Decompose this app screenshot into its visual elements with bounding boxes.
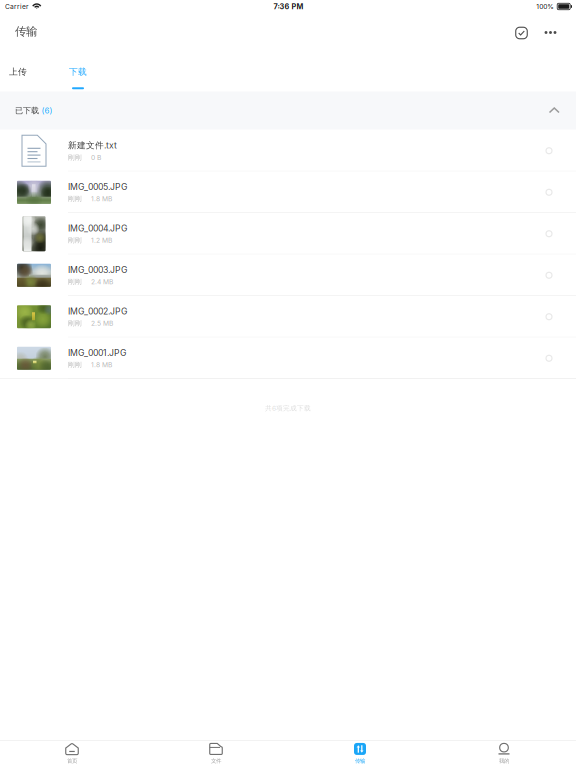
button[interactable]: 首页 <box>0 739 144 767</box>
staticText: 文件 <box>211 757 221 764</box>
staticText: 刚刚 <box>68 195 82 203</box>
staticText: 首页 <box>67 757 77 764</box>
staticText: Carrier <box>5 2 29 11</box>
button[interactable]: 传输 <box>288 739 432 767</box>
staticText: 新建文件.txt <box>68 140 117 151</box>
staticText: 1.2 MB <box>91 236 112 244</box>
staticText: 7:36 PM <box>274 2 304 11</box>
staticText: 下载 <box>69 66 87 77</box>
button[interactable]: IMG_0001.JPG <box>0 337 576 379</box>
button[interactable]: 我的 <box>432 739 576 767</box>
button[interactable]: IMG_0004.JPG <box>0 213 576 254</box>
staticText: 1.8 MB <box>91 361 112 369</box>
staticText: 100% <box>536 2 554 11</box>
button[interactable]: Select all <box>508 21 534 49</box>
staticText: IMG_0005.JPG <box>68 181 127 192</box>
staticText: 我的 <box>499 757 509 764</box>
staticText: 1.8 MB <box>91 195 112 203</box>
staticText: 刚刚 <box>68 236 82 244</box>
button[interactable]: IMG_0005.JPG <box>0 171 576 213</box>
staticText: 刚刚 <box>68 361 82 369</box>
staticText: IMG_0001.JPG <box>68 347 126 358</box>
staticText: 传输 <box>15 24 37 39</box>
button[interactable]: More options <box>534 21 566 49</box>
staticText: IMG_0004.JPG <box>68 223 127 233</box>
staticText: IMG_0003.JPG <box>68 264 127 275</box>
button[interactable]: 上传 <box>0 53 36 91</box>
staticText: IMG_0002.JPG <box>68 306 127 316</box>
staticText: 传输 <box>355 757 365 764</box>
staticText: 已下载 <box>15 105 39 116</box>
button[interactable]: IMG_0002.JPG <box>0 296 576 337</box>
button[interactable]: 已下载 <box>0 91 576 129</box>
staticText: 共6项完成下载 <box>265 404 311 412</box>
staticText: (6) <box>41 106 52 115</box>
staticText: 刚刚 <box>68 319 82 327</box>
button[interactable]: 下载 <box>60 53 96 91</box>
staticText: 刚刚 <box>68 153 82 162</box>
staticText: 2.5 MB <box>91 319 113 327</box>
button[interactable]: 文件 <box>144 739 288 767</box>
staticText: 2.4 MB <box>91 278 113 286</box>
button[interactable]: 新建文件.txt <box>0 130 576 171</box>
staticText: 0 B <box>91 153 101 162</box>
staticText: 上传 <box>9 66 27 77</box>
button[interactable]: IMG_0003.JPG <box>0 254 576 296</box>
staticText: 刚刚 <box>68 278 82 286</box>
